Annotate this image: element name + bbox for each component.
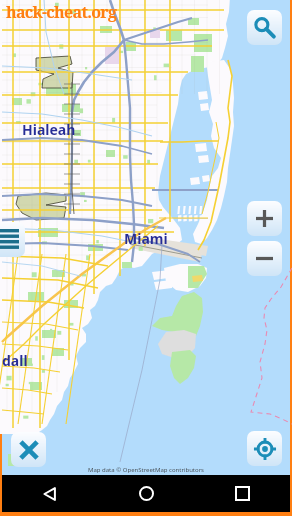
button[interactable]: Back (2, 475, 98, 512)
button[interactable]: Zoom in (247, 201, 282, 236)
button[interactable]: Layers (0, 222, 25, 257)
button[interactable]: Recents (194, 475, 290, 512)
button[interactable]: Zoom out (247, 241, 282, 276)
staticText: dall (2, 351, 28, 370)
staticText: Miami (124, 229, 168, 248)
button[interactable]: Search (247, 10, 282, 45)
button[interactable]: My location (247, 431, 282, 466)
button[interactable]: Clear (11, 432, 46, 467)
button[interactable]: Home (98, 475, 194, 512)
staticText: Hialeah (22, 120, 76, 139)
staticText: Map data © OpenStreetMap contributors (88, 466, 204, 474)
staticText: hack-cheat.org (6, 1, 117, 23)
